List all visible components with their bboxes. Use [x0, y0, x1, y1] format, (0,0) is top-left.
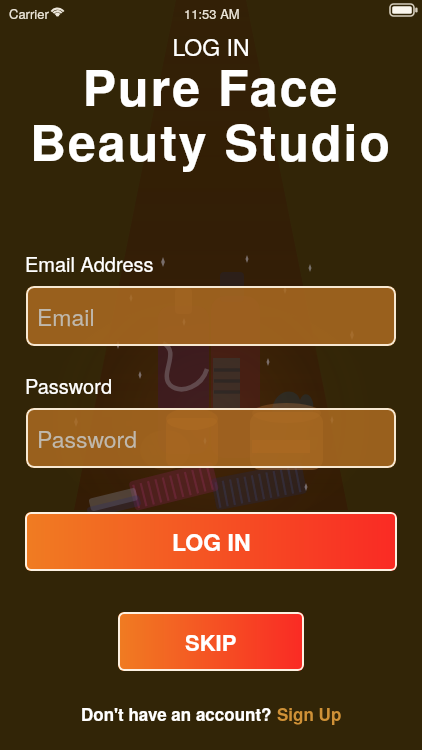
button[interactable]: LOG IN	[25, 512, 397, 571]
staticText: Email	[37, 300, 95, 333]
other: Wi-Fi signal	[50, 5, 65, 17]
staticText: Don't have an account?	[81, 702, 277, 726]
staticText: SKIP	[185, 626, 237, 658]
staticText: Pure Face Beauty Studio	[0, 50, 422, 177]
other: Battery full	[390, 4, 418, 16]
button[interactable]: SKIP	[118, 612, 304, 671]
staticText: LOG IN	[172, 525, 251, 558]
staticText: Password	[25, 371, 112, 400]
staticText: Email Address	[25, 249, 154, 278]
button[interactable]: Password	[26, 408, 396, 468]
staticText: Carrier	[9, 4, 49, 23]
staticText: 11:53 AM	[184, 4, 240, 23]
button[interactable]: Sign Up	[277, 702, 342, 726]
staticText: LOG IN	[0, 30, 422, 63]
staticText: Password	[37, 422, 138, 455]
button[interactable]: Email	[26, 286, 396, 346]
